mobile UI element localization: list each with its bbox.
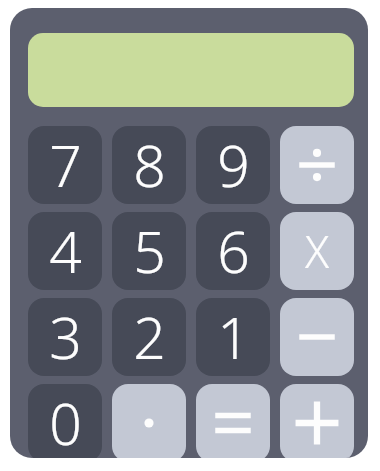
- button[interactable]: 6: [196, 212, 270, 290]
- button[interactable]: 0: [28, 384, 102, 458]
- button[interactable]: 2: [112, 298, 186, 376]
- button[interactable]: 8: [112, 126, 186, 204]
- button[interactable]: Divide: [280, 126, 354, 204]
- staticText: 1: [217, 298, 250, 376]
- staticText: 9: [217, 126, 250, 204]
- staticText: X: [305, 221, 330, 281]
- button[interactable]: 7: [28, 126, 102, 204]
- button[interactable]: Decimal point: [112, 384, 186, 458]
- button[interactable]: 9: [196, 126, 270, 204]
- staticText: 5: [133, 212, 166, 290]
- staticText: 8: [133, 126, 166, 204]
- button[interactable]: 3: [28, 298, 102, 376]
- staticText: 3: [49, 298, 82, 376]
- staticText: 0: [49, 384, 82, 458]
- button[interactable]: Add: [280, 384, 354, 458]
- button[interactable]: [28, 33, 354, 107]
- button[interactable]: Subtract: [280, 298, 354, 376]
- button[interactable]: Equals: [196, 384, 270, 458]
- button[interactable]: 5: [112, 212, 186, 290]
- button[interactable]: Multiply: [280, 212, 354, 290]
- staticText: 6: [217, 212, 250, 290]
- staticText: 7: [49, 126, 82, 204]
- button[interactable]: 4: [28, 212, 102, 290]
- button[interactable]: 1: [196, 298, 270, 376]
- staticText: 4: [49, 212, 82, 290]
- staticText: 2: [133, 298, 166, 376]
